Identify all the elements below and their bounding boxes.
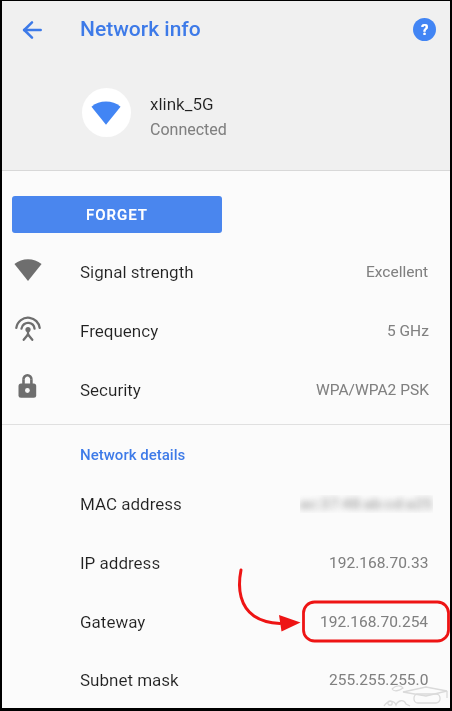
button[interactable]: Signal strength: [2, 242, 450, 301]
button[interactable]: IP address: [2, 533, 450, 592]
staticText: Signal strength: [80, 262, 194, 282]
staticText: Security: [80, 380, 141, 400]
button[interactable]: Gateway: [2, 592, 450, 651]
staticText: ac:37:48:ab:cd:a25: [300, 495, 433, 513]
staticText: Frequency: [80, 321, 159, 341]
staticText: Network info: [80, 17, 201, 42]
staticText: Connected: [150, 120, 227, 139]
button[interactable]: Security: [2, 360, 450, 419]
button[interactable]: Subnet mask: [2, 650, 450, 709]
staticText: ?: [421, 21, 429, 39]
staticText: FORGET: [86, 206, 148, 224]
staticText: Gateway: [80, 612, 146, 632]
button[interactable]: [15, 13, 49, 47]
staticText: 192.168.70.254: [320, 613, 429, 631]
staticText: WPA/WPA2 PSK: [316, 381, 429, 399]
button[interactable]: Frequency: [2, 301, 450, 360]
staticText: 192.168.70.33: [329, 554, 429, 572]
button[interactable]: MAC address: [2, 474, 450, 533]
staticText: Subnet mask: [80, 670, 179, 690]
staticText: xlink_5G: [150, 94, 214, 114]
staticText: IP address: [80, 553, 161, 573]
staticText: Network details: [80, 446, 186, 464]
button[interactable]: ?: [413, 18, 436, 41]
staticText: 5 GHz: [387, 322, 429, 340]
staticText: 255.255.255.0: [329, 671, 429, 689]
staticText: Excellent: [366, 263, 429, 281]
staticText: MAC address: [80, 494, 182, 514]
button[interactable]: FORGET: [12, 196, 222, 233]
